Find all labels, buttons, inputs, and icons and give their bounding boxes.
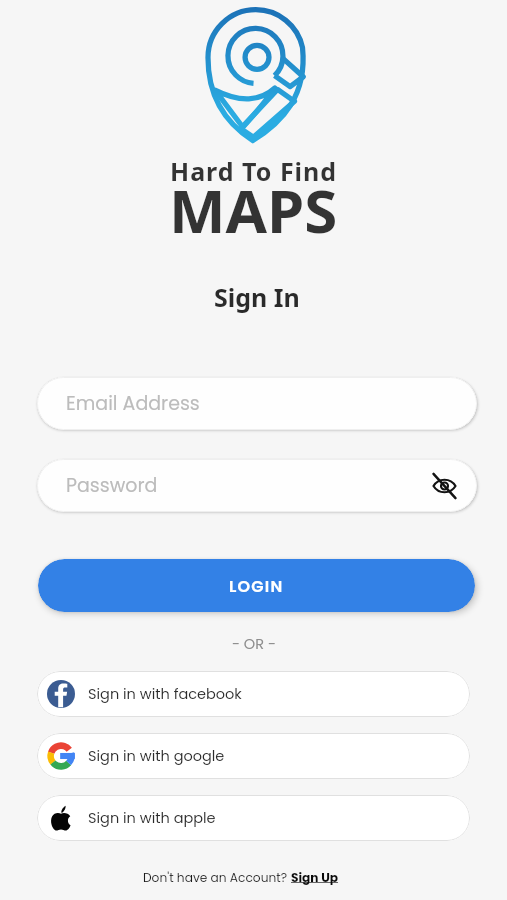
staticText: LOGIN bbox=[229, 575, 284, 597]
staticText: Password bbox=[66, 472, 158, 499]
button[interactable]: LOGIN bbox=[38, 559, 475, 612]
staticText: Email Address bbox=[66, 390, 200, 417]
staticText: Sign in with facebook bbox=[88, 684, 242, 704]
button[interactable]: Sign Up bbox=[291, 869, 339, 886]
button[interactable]: Sign in with apple bbox=[37, 795, 470, 841]
button[interactable]: Sign in with facebook bbox=[37, 671, 470, 717]
staticText: MAPS bbox=[169, 169, 338, 251]
button[interactable]: Password bbox=[37, 459, 477, 512]
button[interactable]: Email Address bbox=[37, 377, 477, 430]
staticText: Sign in with google bbox=[88, 746, 225, 766]
staticText: - OR - bbox=[232, 634, 276, 654]
staticText: Sign in with apple bbox=[88, 808, 216, 828]
staticText: Sign In bbox=[214, 280, 300, 314]
other: Show password bbox=[432, 475, 457, 497]
button[interactable]: Sign in with google bbox=[37, 733, 470, 779]
staticText: Hard To Find bbox=[170, 154, 338, 188]
staticText: Don't have an Account? bbox=[143, 869, 291, 886]
